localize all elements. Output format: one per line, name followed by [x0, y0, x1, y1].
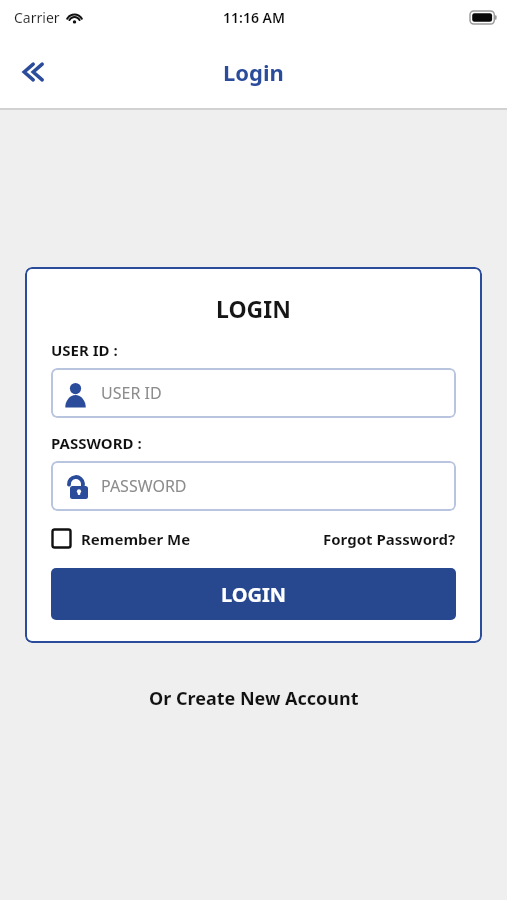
- button[interactable]: PASSWORD: [51, 461, 456, 511]
- staticText: Login: [223, 57, 284, 87]
- staticText: Remember Me: [81, 529, 191, 549]
- button[interactable]: USER ID: [51, 368, 456, 418]
- staticText: Forgot Password?: [323, 529, 456, 549]
- staticText: USER ID: [101, 382, 162, 404]
- button[interactable]: Back: [12, 49, 58, 95]
- staticText: PASSWORD: [101, 475, 187, 497]
- staticText: LOGIN: [216, 293, 291, 324]
- staticText: Or Create New Account: [149, 686, 359, 711]
- staticText: PASSWORD :: [51, 433, 142, 453]
- button[interactable]: Forgot Password?: [323, 529, 456, 549]
- staticText: USER ID :: [51, 340, 118, 360]
- staticText: LOGIN: [221, 581, 287, 608]
- button[interactable]: Remember Me: [51, 528, 191, 549]
- button[interactable]: LOGIN: [51, 568, 456, 620]
- button[interactable]: Or Create New Account: [0, 686, 507, 711]
- staticText: Carrier: [14, 8, 60, 27]
- staticText: 11:16 AM: [223, 8, 285, 27]
